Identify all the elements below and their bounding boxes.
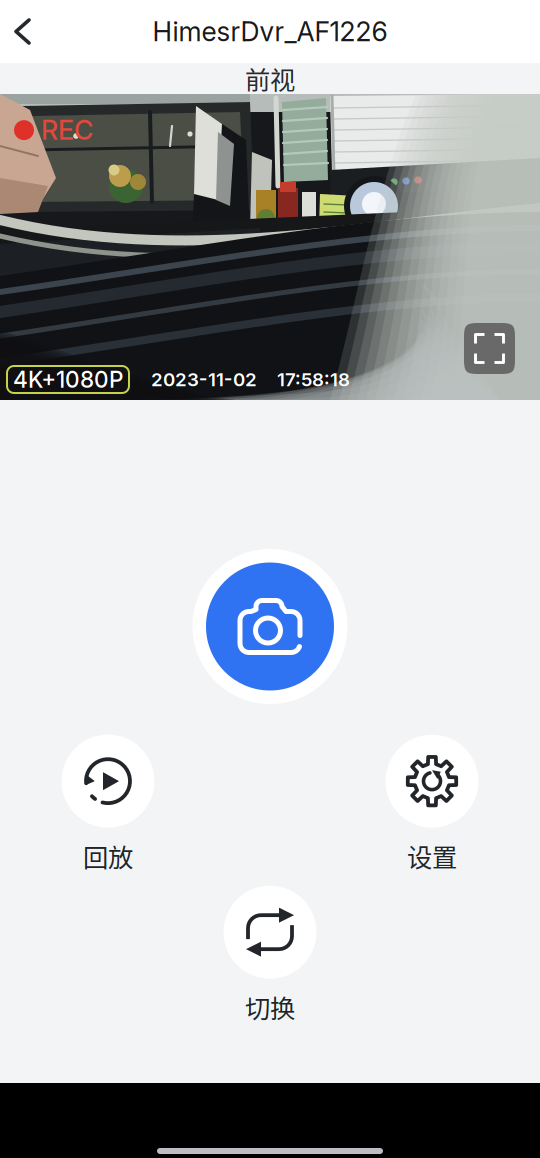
- button[interactable]: Fullscreen: [464, 323, 515, 374]
- staticText: HimesrDvr_AF1226: [152, 15, 387, 48]
- staticText: 切换: [245, 989, 295, 1025]
- staticText: 设置: [407, 838, 457, 874]
- button[interactable]: Settings: [367, 735, 497, 874]
- button[interactable]: Playback: [43, 735, 173, 874]
- staticText: REC: [41, 114, 93, 146]
- staticText: 4K+1080P: [13, 366, 123, 393]
- staticText: 前视: [245, 60, 295, 97]
- staticText: 回放: [83, 838, 133, 874]
- button[interactable]: Switch camera: [205, 886, 335, 1025]
- staticText: 2023-11-02: [151, 368, 257, 391]
- button[interactable]: Back: [1, 6, 45, 56]
- staticText: 17:58:18: [277, 368, 350, 391]
- button[interactable]: Capture photo: [192, 549, 347, 704]
